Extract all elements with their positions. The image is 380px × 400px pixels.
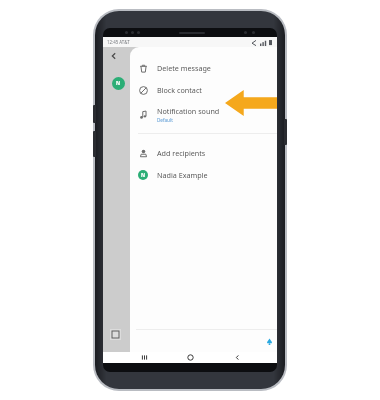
button[interactable]: Back (109, 51, 119, 61)
staticText: Block contact (157, 85, 202, 95)
button[interactable]: Notifications (262, 334, 276, 348)
button[interactable]: Recents (138, 352, 150, 363)
staticText: Default (157, 117, 173, 123)
button[interactable]: Add recipients (130, 142, 277, 164)
button[interactable]: Home (184, 352, 196, 363)
button[interactable]: Delete message (130, 57, 277, 79)
button[interactable]: Back (231, 352, 243, 363)
staticText: Add recipients (157, 148, 206, 158)
button[interactable]: Block contact (130, 79, 277, 101)
staticText: Notification sound (157, 106, 220, 116)
staticText: N (141, 172, 146, 179)
staticText: Delete message (157, 63, 211, 73)
staticText: 12:45 AT&T (107, 39, 130, 45)
staticText: Nadia Example (157, 170, 208, 180)
staticText: N (116, 80, 121, 87)
button[interactable]: N (130, 164, 277, 186)
button[interactable]: Notification sound (130, 101, 277, 127)
